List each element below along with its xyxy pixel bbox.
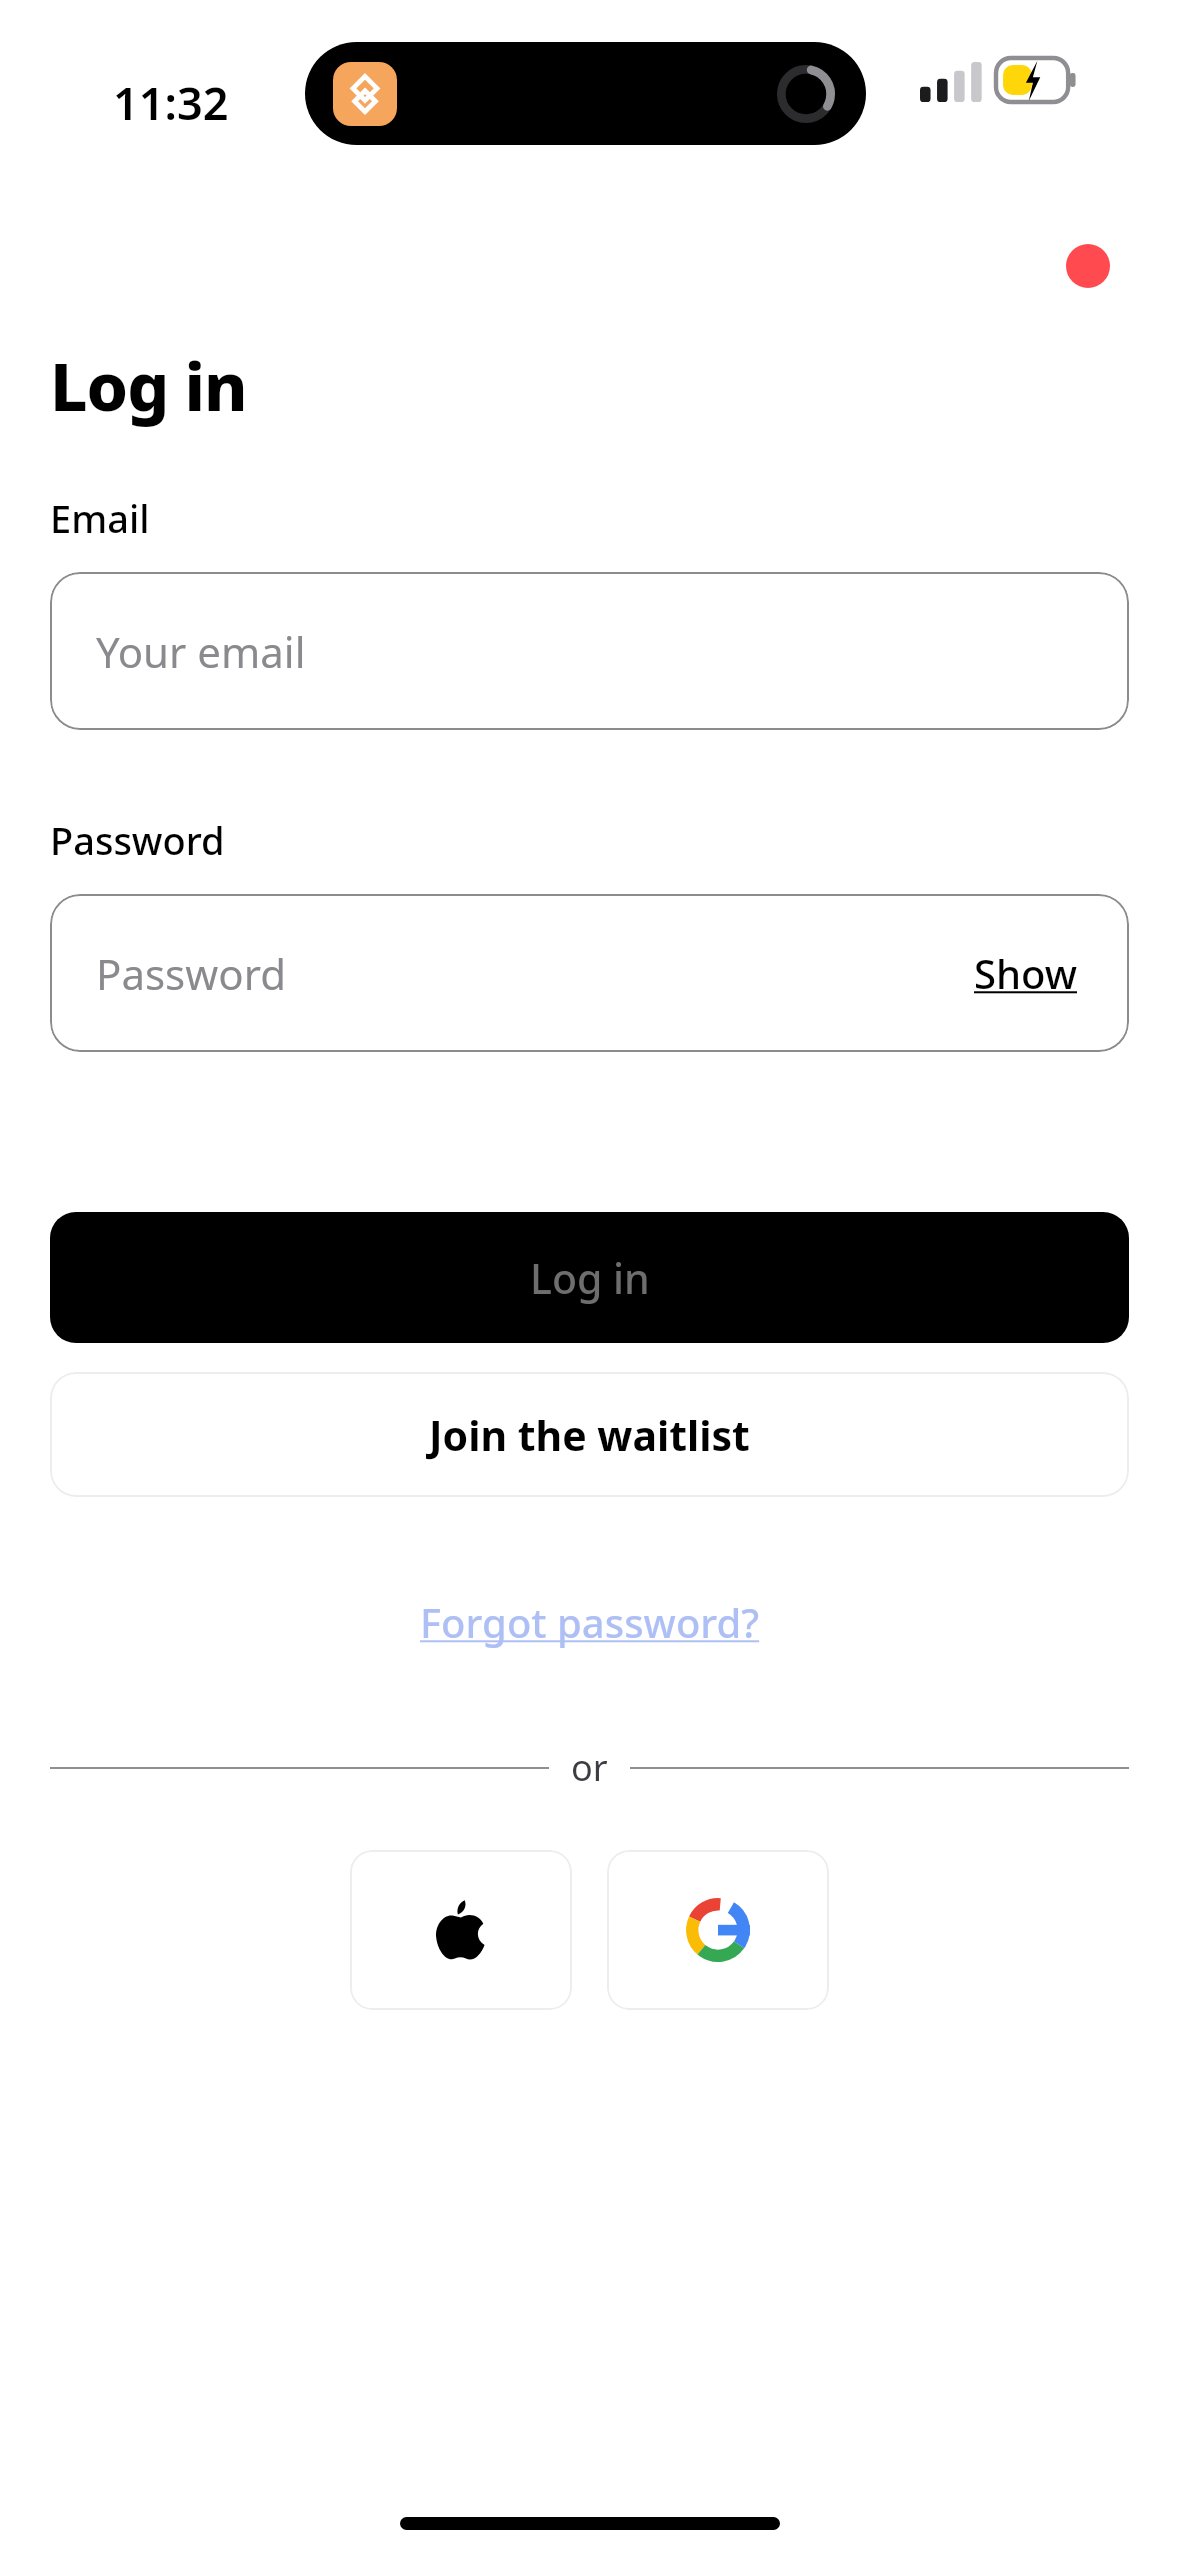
staticText: Log in: [50, 340, 247, 430]
staticText: Password: [96, 945, 286, 1002]
staticText: 11:32: [113, 72, 229, 133]
staticText: Forgot password?: [420, 1595, 760, 1649]
button[interactable]: Notifications: [1066, 244, 1110, 288]
button[interactable]: Forgot password?: [410, 1587, 770, 1657]
staticText: Join the waitlist: [429, 1407, 750, 1463]
button[interactable]: Join the waitlist: [50, 1372, 1129, 1497]
staticText: Password: [50, 814, 225, 866]
button[interactable]: Your email: [50, 572, 1129, 730]
button[interactable]: Log in: [50, 1212, 1129, 1343]
staticText: Log in: [530, 1250, 650, 1306]
button[interactable]: Sign in with Apple: [350, 1850, 572, 2010]
staticText: Your email: [96, 623, 306, 680]
button[interactable]: Sign in with Google: [607, 1850, 829, 2010]
staticText: Email: [50, 492, 150, 544]
button[interactable]: Show: [968, 940, 1083, 1006]
button[interactable]: Password: [50, 894, 1129, 1052]
staticText: Show: [974, 946, 1077, 1000]
staticText: or: [571, 1743, 608, 1792]
